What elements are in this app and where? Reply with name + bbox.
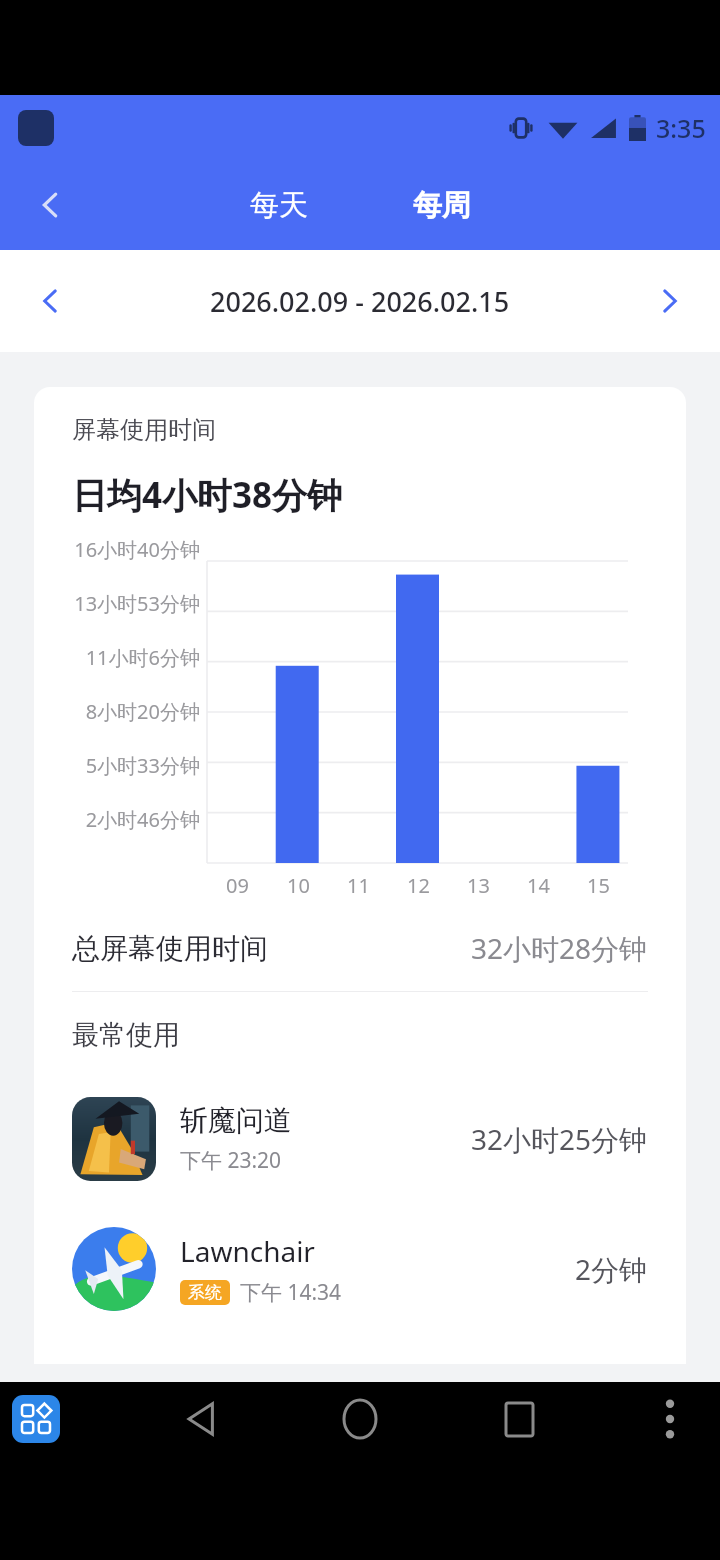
staticText: 最常使用 — [72, 1018, 180, 1052]
button[interactable]: App switcher — [12, 1395, 60, 1443]
button[interactable]: Next week — [620, 250, 720, 352]
staticText: 系统 — [188, 1282, 222, 1303]
staticText: 5小时33分钟 — [38, 752, 200, 779]
button[interactable]: Home — [324, 1383, 396, 1455]
staticText: 2分钟 — [575, 1250, 648, 1288]
staticText: 斩魔问道 — [180, 1103, 292, 1138]
button[interactable]: Back — [165, 1383, 237, 1455]
button[interactable]: Back — [0, 160, 100, 250]
staticText: 每天 — [250, 187, 308, 224]
staticText: 下午 23:20 — [180, 1146, 282, 1175]
staticText: 日均4小时38分钟 — [72, 471, 343, 519]
button[interactable]: Recent apps — [483, 1383, 555, 1455]
staticText: 32小时28分钟 — [471, 929, 648, 967]
staticText: 16小时40分钟 — [38, 536, 200, 563]
staticText: 3:35 — [656, 111, 706, 145]
staticText: Lawnchair — [180, 1232, 315, 1270]
button[interactable]: More options — [644, 1393, 696, 1445]
staticText: 屏幕使用时间 — [72, 415, 216, 445]
staticText: 总屏幕使用时间 — [72, 931, 268, 966]
staticText: 15 — [587, 872, 610, 899]
staticText: 每周 — [413, 187, 471, 224]
staticText: 10 — [287, 872, 310, 899]
staticText: 32小时25分钟 — [471, 1120, 648, 1158]
button[interactable]: 斩魔问道 — [34, 1074, 686, 1204]
button[interactable]: Lawnchair — [34, 1204, 686, 1334]
staticText: 09 — [226, 872, 249, 899]
button[interactable]: Previous week — [0, 250, 100, 352]
staticText: 12 — [407, 872, 430, 899]
staticText: 2026.02.09 - 2026.02.15 — [210, 283, 510, 320]
staticText: 14 — [527, 872, 550, 899]
staticText: 11小时6分钟 — [38, 644, 200, 671]
staticText: 13小时53分钟 — [38, 590, 200, 617]
staticText: 8小时20分钟 — [38, 698, 200, 725]
staticText: 11 — [347, 872, 370, 899]
button[interactable]: 每周 — [360, 160, 523, 250]
button[interactable]: 每天 — [197, 160, 360, 250]
button[interactable]: 总屏幕使用时间 — [34, 905, 686, 991]
staticText: 下午 14:34 — [240, 1278, 342, 1307]
staticText: 2小时46分钟 — [38, 806, 200, 833]
staticText: 13 — [467, 872, 490, 899]
